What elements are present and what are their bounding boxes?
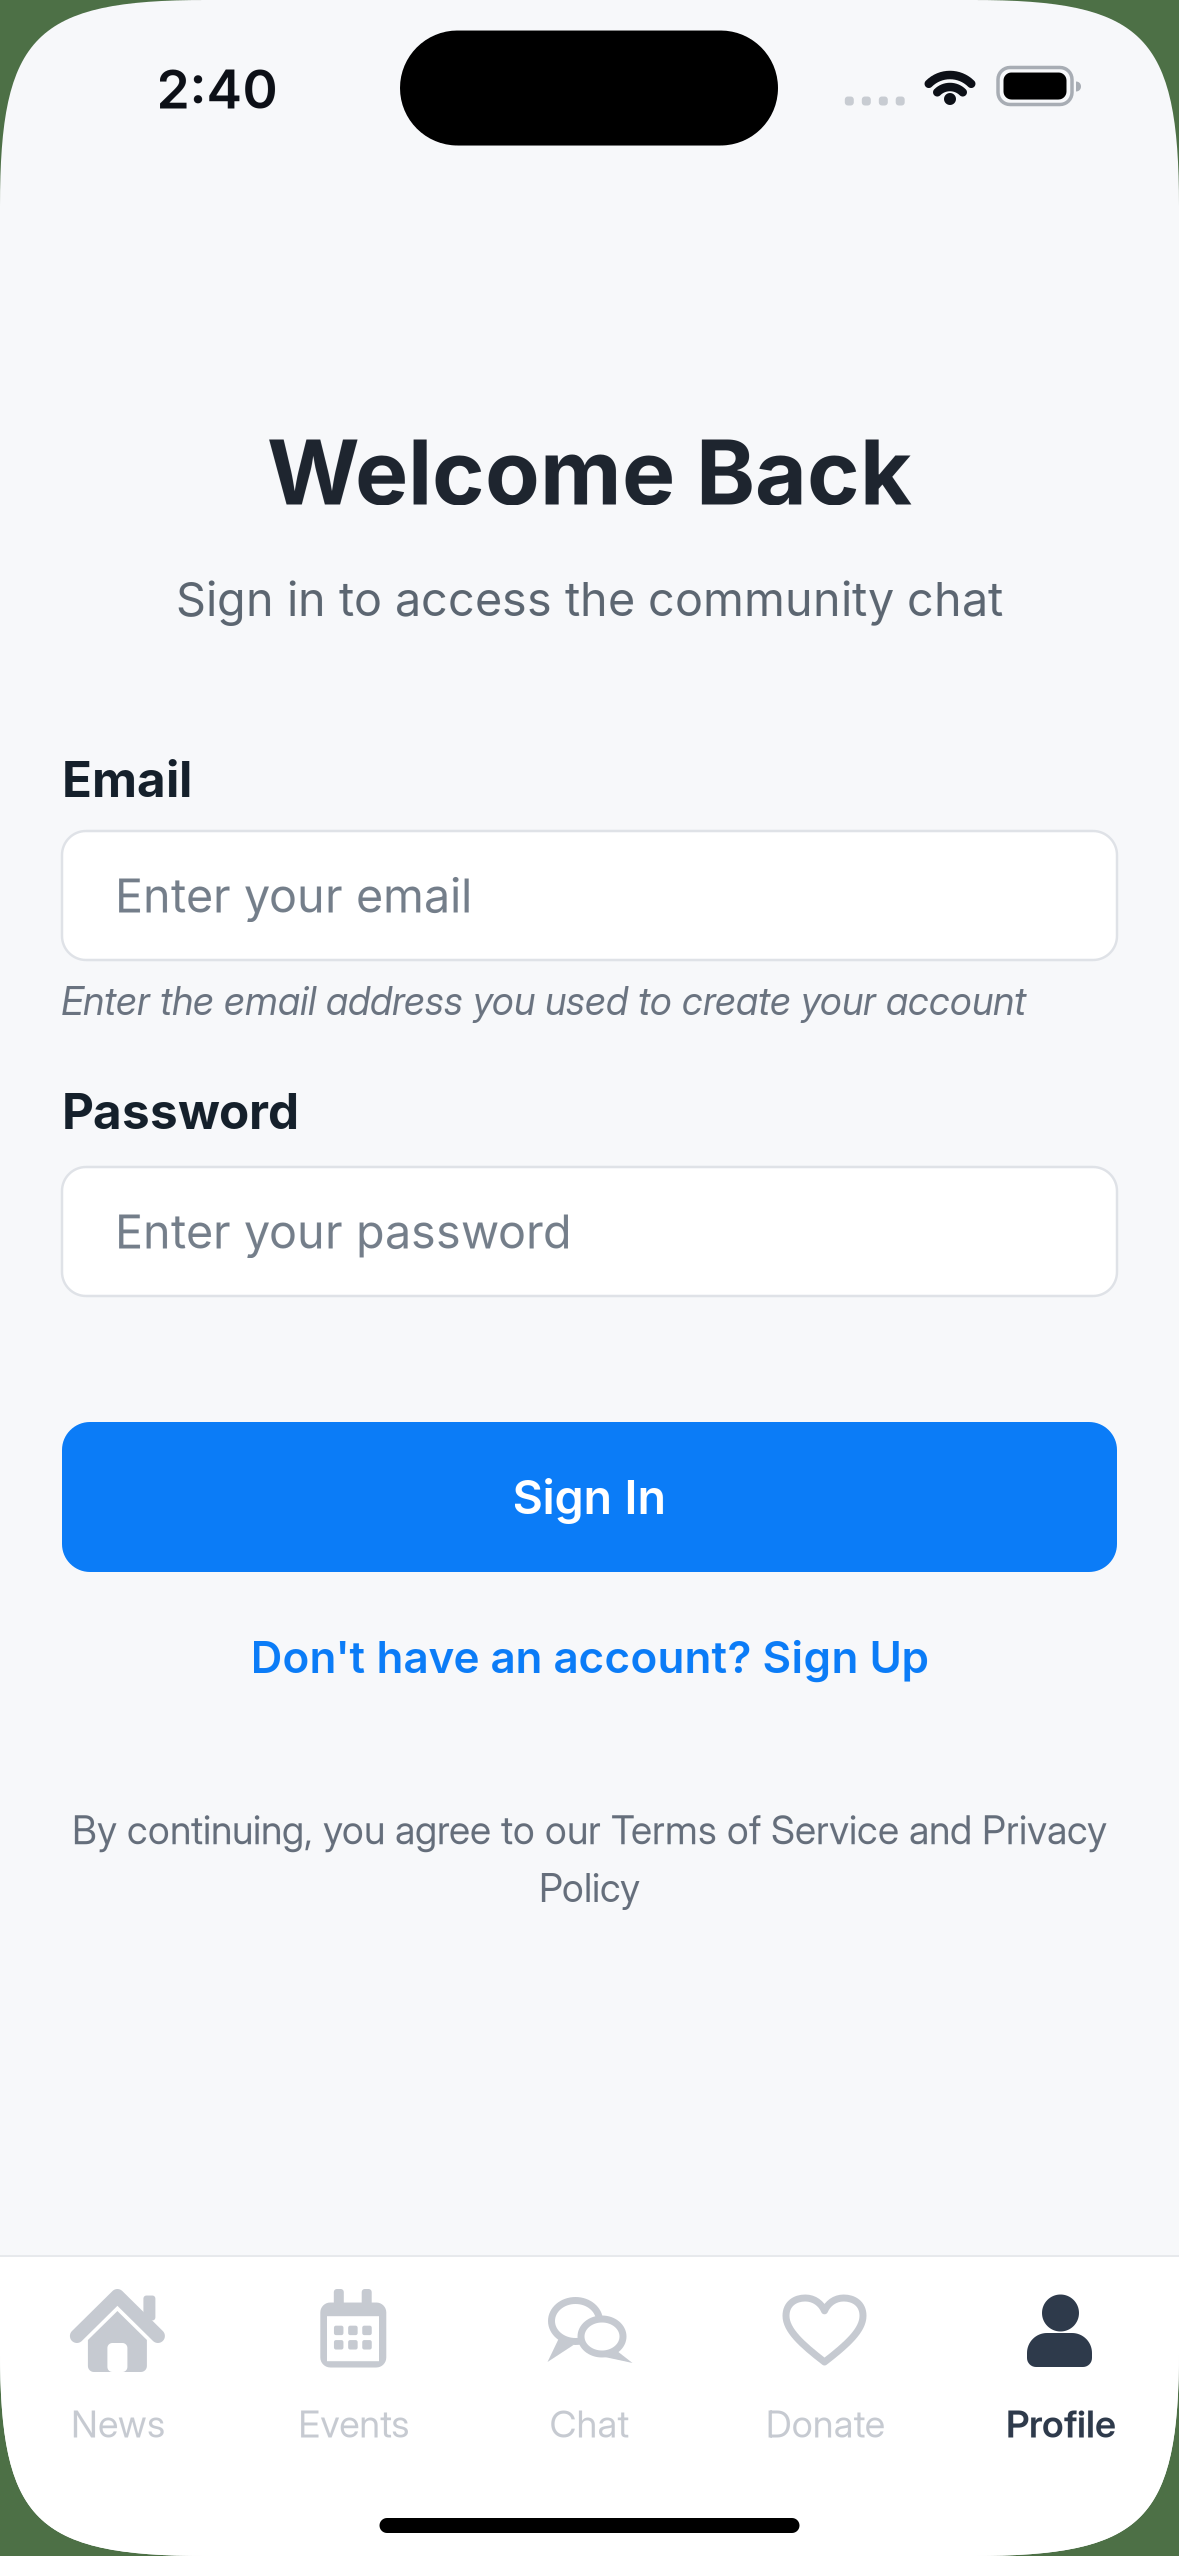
button[interactable]: Sign In (62, 1422, 1117, 1572)
staticText: Donate (766, 2402, 885, 2446)
button[interactable]: Enter your email (62, 831, 1117, 960)
button[interactable]: Enter your password (62, 1167, 1117, 1296)
staticText: Enter your password (115, 1204, 572, 1259)
staticText: 2:40 (156, 57, 277, 120)
button[interactable]: Chat (471, 2265, 707, 2455)
button[interactable]: Don't have an account? Sign Up (250, 1631, 928, 1683)
staticText: Don't have an account? Sign Up (250, 1631, 928, 1683)
staticText: Enter your email (115, 868, 472, 923)
staticText: Profile (1006, 2402, 1116, 2446)
staticText: News (71, 2402, 165, 2446)
staticText: Policy (539, 1865, 640, 1911)
staticText: Sign in to access the community chat (176, 571, 1003, 627)
button[interactable]: News (0, 2265, 236, 2455)
staticText: Chat (549, 2402, 629, 2446)
staticText: Welcome Back (267, 419, 912, 525)
button[interactable]: Donate (707, 2265, 943, 2455)
staticText: Password (62, 1082, 299, 1140)
staticText: By continuing, you agree to our Terms of… (72, 1807, 1107, 1853)
button[interactable]: Profile (943, 2265, 1179, 2455)
staticText: Enter the email address you used to crea… (61, 978, 1026, 1024)
staticText: Sign In (512, 1469, 666, 1525)
staticText: Email (62, 750, 192, 808)
button[interactable]: Events (236, 2265, 472, 2455)
staticText: Events (298, 2402, 409, 2446)
